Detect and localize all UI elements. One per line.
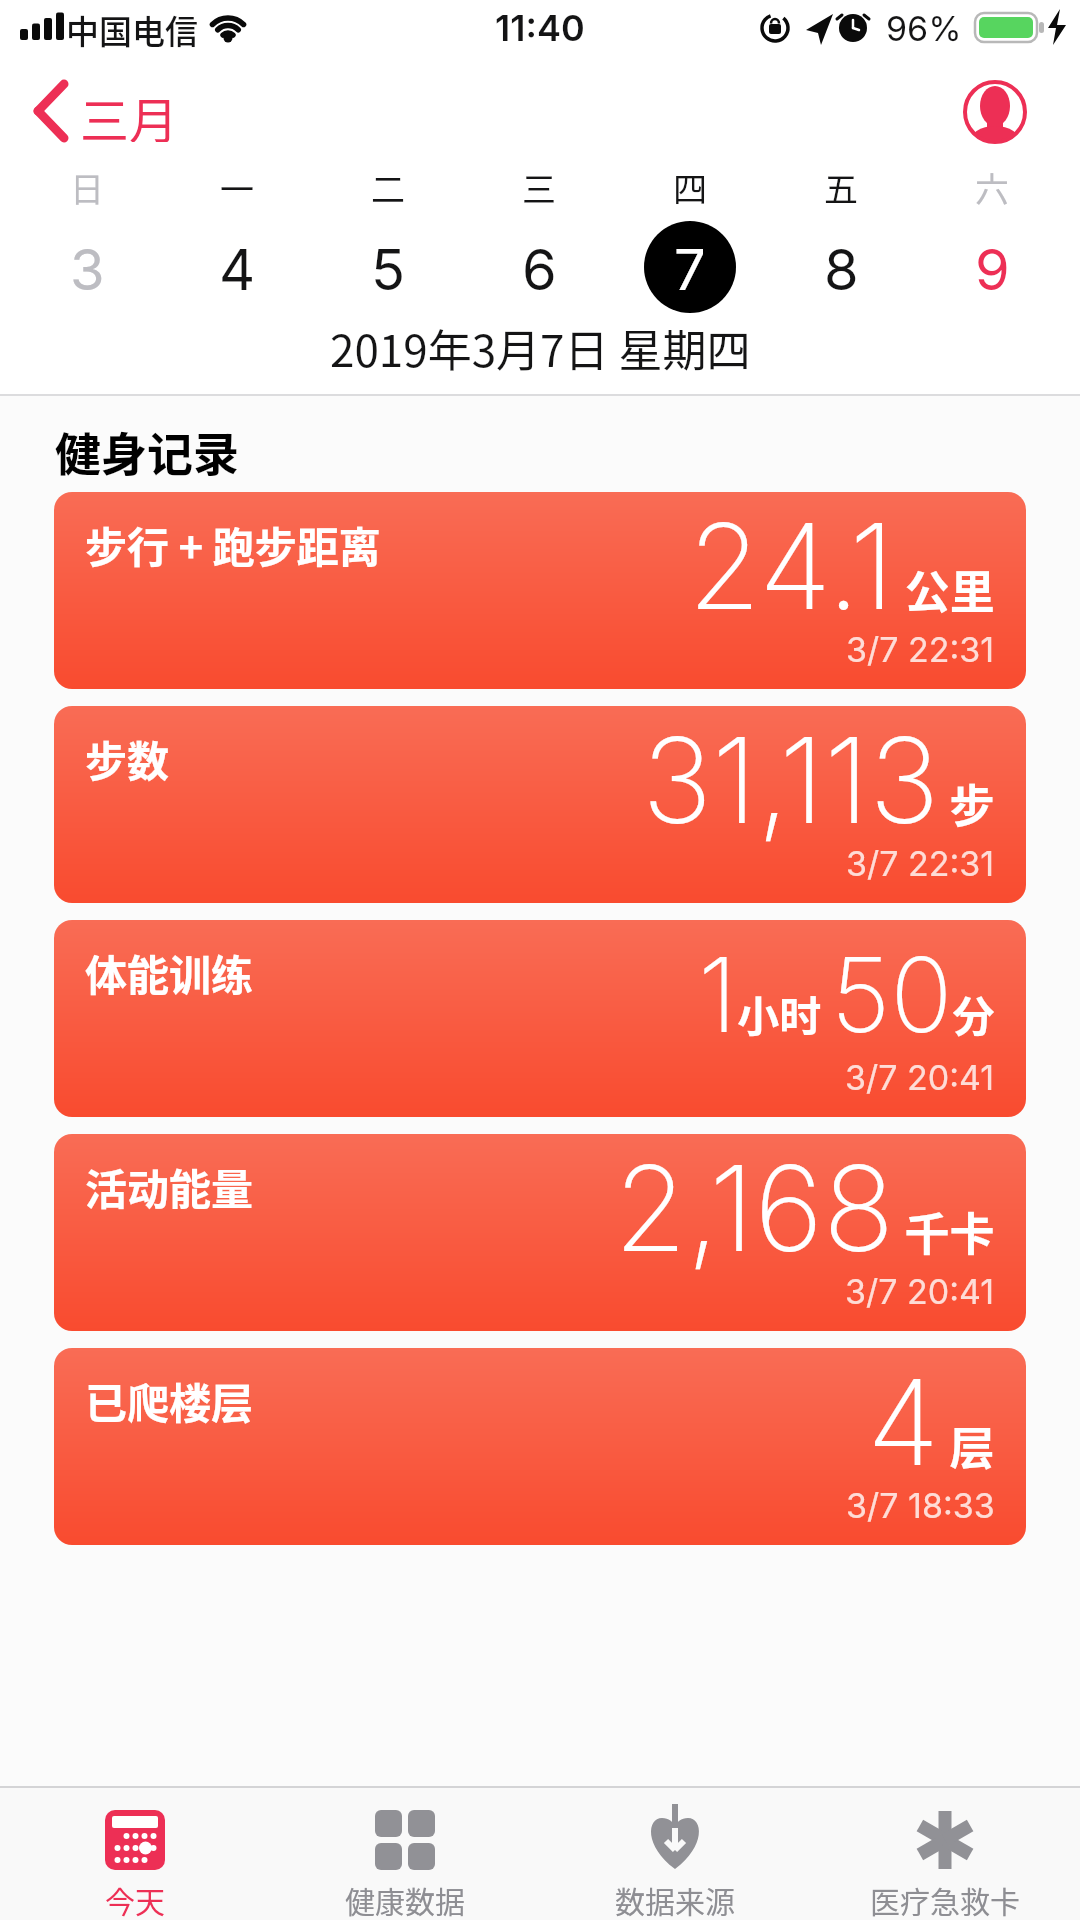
staticText: 2,168 千卡: [614, 1137, 995, 1280]
staticText: 已爬楼层: [85, 1370, 254, 1430]
staticText: 4: [219, 236, 256, 298]
staticText: 今天: [105, 1878, 165, 1918]
staticText: 医疗急救卡: [870, 1878, 1020, 1918]
staticText: 步行 + 跑步距离: [85, 514, 381, 574]
staticText: 3/7 20:41: [845, 1271, 995, 1312]
staticText: 31,113 步: [642, 709, 995, 852]
staticText: 96%: [886, 8, 962, 49]
staticText: 健康数据: [345, 1878, 465, 1918]
staticText: 步数: [85, 728, 170, 788]
staticText: 3: [70, 236, 105, 298]
staticText: 四: [673, 163, 707, 212]
staticText: 五: [824, 163, 858, 212]
staticText: 11:40: [495, 6, 585, 50]
staticText: 二: [371, 163, 405, 212]
staticText: 4 层: [867, 1351, 995, 1494]
staticText: 9: [975, 236, 1010, 298]
staticText: 3/7 18:33: [846, 1485, 995, 1526]
staticText: 3/7 20:41: [845, 1057, 995, 1098]
staticText: 2019年3月7日 星期四: [330, 316, 751, 376]
staticText: 日: [70, 163, 104, 212]
staticText: 6: [522, 236, 557, 298]
staticText: 三: [522, 163, 556, 212]
staticText: 5: [371, 236, 406, 298]
staticText: 1小时 50分: [698, 932, 995, 1057]
staticText: 一: [220, 163, 254, 212]
staticText: 8: [824, 236, 859, 298]
staticText: 7: [674, 236, 706, 298]
staticText: 数据来源: [615, 1878, 735, 1918]
staticText: 中国电信: [66, 6, 198, 50]
staticText: 体能训练: [85, 942, 254, 1002]
staticText: 24.1 公里: [688, 495, 995, 638]
staticText: 活动能量: [85, 1156, 254, 1216]
staticText: 六: [975, 163, 1009, 212]
staticText: 3/7 22:31: [846, 843, 995, 884]
staticText: 三月: [80, 82, 179, 142]
staticText: 健身记录: [55, 418, 239, 480]
staticText: 3/7 22:31: [846, 629, 995, 670]
